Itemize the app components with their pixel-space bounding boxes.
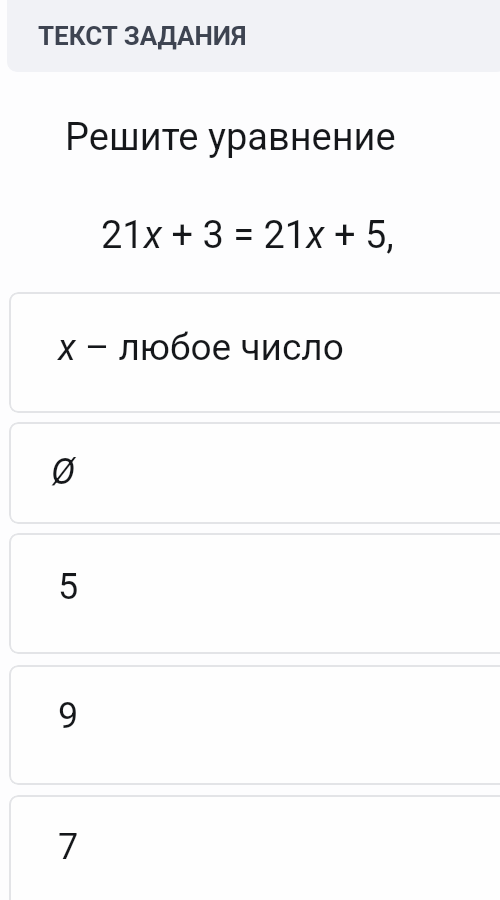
- button[interactable]: ТЕКСТ ЗАДАНИЯ: [7, 0, 500, 72]
- button[interactable]: Пустое множество: [9, 422, 500, 524]
- staticText: 9: [58, 695, 79, 737]
- staticText: ТЕКСТ ЗАДАНИЯ: [38, 21, 247, 51]
- staticText: 21x + 3 = 21x + 5,: [101, 213, 394, 258]
- staticText: 5: [58, 566, 79, 608]
- button[interactable]: 7: [9, 795, 500, 900]
- staticText: 7: [58, 826, 79, 868]
- button[interactable]: 5: [9, 533, 500, 654]
- staticText: x – любое число: [58, 326, 344, 369]
- staticText: Ø: [51, 451, 76, 493]
- staticText: Решите уравнение: [65, 115, 396, 160]
- button[interactable]: 9: [9, 665, 500, 785]
- button[interactable]: x – любое число: [9, 292, 500, 413]
